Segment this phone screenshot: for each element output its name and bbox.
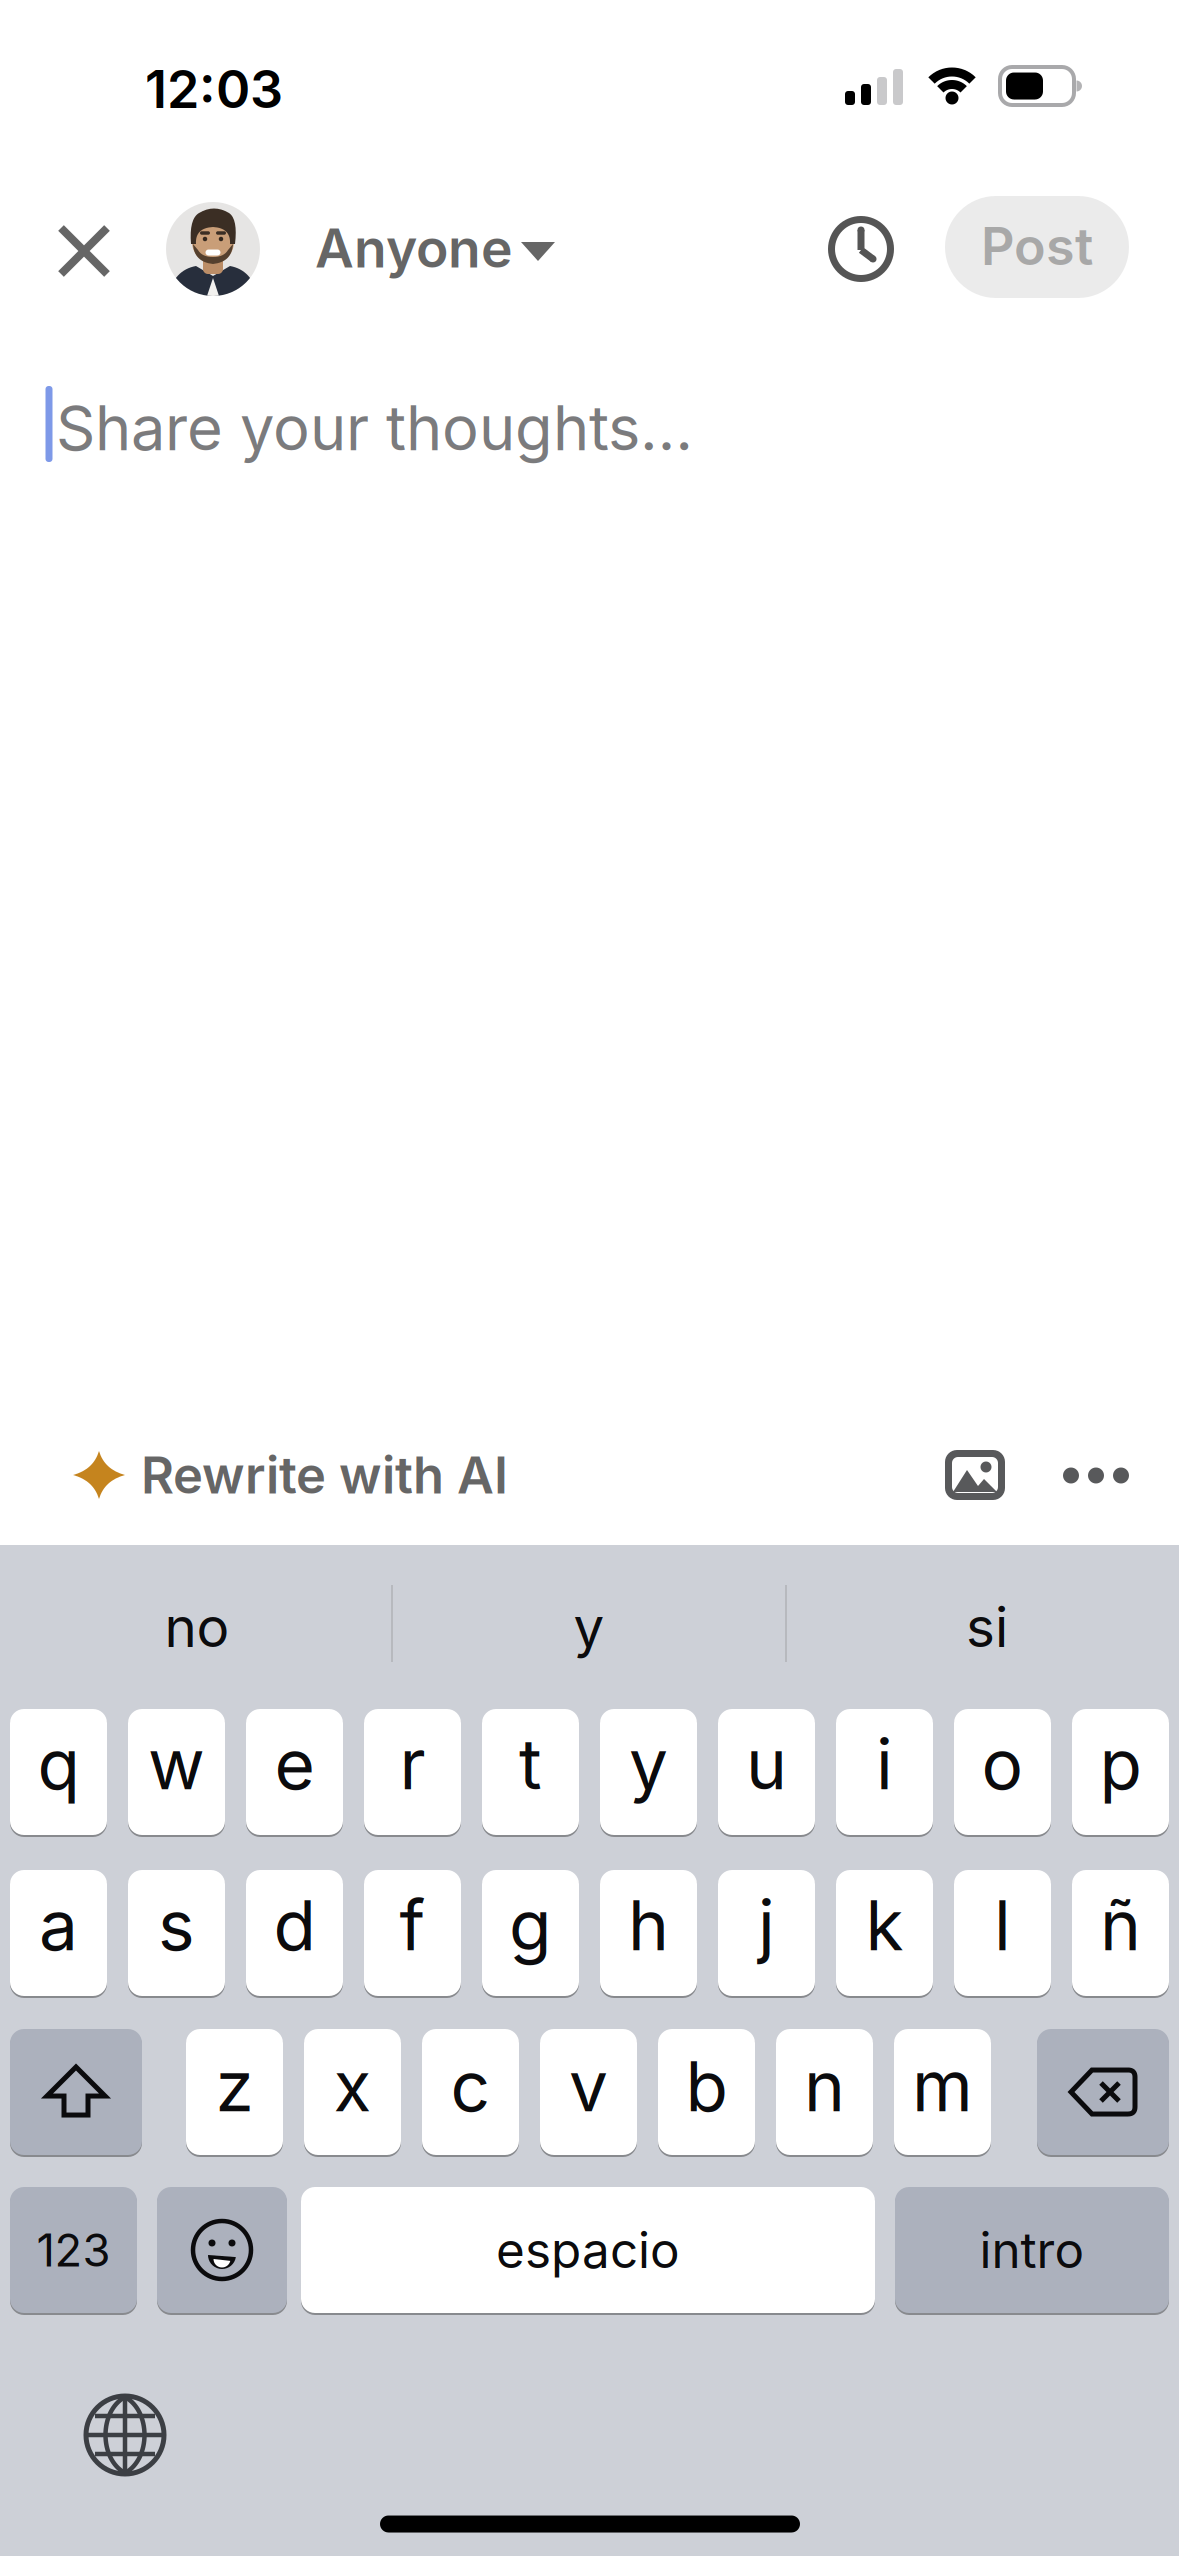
staticText: no bbox=[164, 1595, 229, 1659]
button[interactable]: espacio bbox=[301, 2187, 875, 2313]
staticText: t bbox=[519, 1723, 542, 1805]
button[interactable]: s bbox=[128, 1870, 225, 1996]
staticText: q bbox=[37, 1723, 79, 1805]
staticText: l bbox=[994, 1884, 1011, 1966]
button[interactable]: Rewrite with AI bbox=[73, 1445, 573, 1505]
staticText: k bbox=[865, 1884, 903, 1966]
button[interactable]: v bbox=[540, 2029, 637, 2155]
button[interactable]: u bbox=[718, 1709, 815, 1835]
button[interactable]: n bbox=[776, 2029, 873, 2155]
staticText: b bbox=[685, 2045, 727, 2127]
staticText: i bbox=[876, 1723, 893, 1805]
staticText: m bbox=[912, 2045, 973, 2127]
staticText: f bbox=[399, 1884, 425, 1966]
staticText: Anyone bbox=[315, 216, 513, 279]
staticText: r bbox=[399, 1723, 425, 1805]
button[interactable]: a bbox=[10, 1870, 107, 1996]
button[interactable]: Shift bbox=[10, 2029, 142, 2155]
staticText: y bbox=[629, 1723, 668, 1805]
button[interactable]: e bbox=[246, 1709, 343, 1835]
button[interactable]: 123 bbox=[10, 2187, 137, 2313]
button[interactable]: b bbox=[658, 2029, 755, 2155]
button[interactable]: Close bbox=[58, 225, 110, 277]
button[interactable]: m bbox=[894, 2029, 991, 2155]
staticText: espacio bbox=[496, 2221, 680, 2279]
button[interactable]: y bbox=[600, 1709, 697, 1835]
staticText: x bbox=[333, 2045, 371, 2127]
button[interactable]: Post bbox=[945, 196, 1129, 298]
staticText: Post bbox=[981, 215, 1093, 277]
button[interactable]: Schedule post bbox=[828, 216, 894, 282]
staticText: Rewrite with AI bbox=[141, 1445, 508, 1505]
staticText: 123 bbox=[36, 2223, 110, 2277]
staticText: j bbox=[758, 1884, 775, 1966]
button[interactable]: Delete bbox=[1037, 2029, 1169, 2155]
staticText: n bbox=[804, 2045, 845, 2127]
button[interactable]: o bbox=[954, 1709, 1051, 1835]
button[interactable]: t bbox=[482, 1709, 579, 1835]
button[interactable]: no bbox=[27, 1572, 367, 1682]
button[interactable]: x bbox=[304, 2029, 401, 2155]
staticText: u bbox=[746, 1723, 787, 1805]
staticText: d bbox=[273, 1884, 315, 1966]
button[interactable]: h bbox=[600, 1870, 697, 1996]
button[interactable]: l bbox=[954, 1870, 1051, 1996]
button[interactable]: si bbox=[817, 1572, 1157, 1682]
button[interactable]: y bbox=[419, 1572, 759, 1682]
button[interactable]: k bbox=[836, 1870, 933, 1996]
button[interactable]: q bbox=[10, 1709, 107, 1835]
staticText: ñ bbox=[1100, 1884, 1141, 1966]
staticText: Share your thoughts… bbox=[56, 392, 693, 464]
button[interactable]: Post visibility: Anyone bbox=[166, 199, 606, 299]
button[interactable]: g bbox=[482, 1870, 579, 1996]
staticText: 12:03 bbox=[145, 58, 283, 120]
button[interactable]: w bbox=[128, 1709, 225, 1835]
button[interactable]: More options bbox=[1063, 1467, 1129, 1484]
staticText: o bbox=[981, 1723, 1023, 1805]
staticText: c bbox=[450, 2045, 490, 2127]
staticText: si bbox=[966, 1595, 1008, 1659]
staticText: w bbox=[148, 1723, 205, 1805]
button[interactable]: intro bbox=[895, 2187, 1169, 2313]
staticText: a bbox=[39, 1884, 78, 1966]
button[interactable]: Emoji bbox=[157, 2187, 287, 2313]
staticText: s bbox=[158, 1884, 195, 1966]
staticText: g bbox=[509, 1884, 552, 1966]
staticText: p bbox=[1099, 1723, 1141, 1805]
staticText: e bbox=[274, 1723, 314, 1805]
button[interactable]: r bbox=[364, 1709, 461, 1835]
button[interactable]: z bbox=[186, 2029, 283, 2155]
button[interactable]: Next keyboard bbox=[83, 2393, 167, 2477]
staticText: z bbox=[215, 2045, 253, 2127]
staticText: h bbox=[628, 1884, 669, 1966]
staticText: intro bbox=[979, 2221, 1084, 2279]
button[interactable]: ñ bbox=[1072, 1870, 1169, 1996]
button[interactable]: i bbox=[836, 1709, 933, 1835]
button[interactable]: c bbox=[422, 2029, 519, 2155]
staticText: v bbox=[569, 2045, 608, 2127]
button[interactable]: d bbox=[246, 1870, 343, 1996]
staticText: y bbox=[573, 1595, 604, 1659]
button[interactable]: Add photo bbox=[945, 1450, 1005, 1500]
button[interactable]: p bbox=[1072, 1709, 1169, 1835]
button[interactable]: j bbox=[718, 1870, 815, 1996]
button[interactable]: f bbox=[364, 1870, 461, 1996]
